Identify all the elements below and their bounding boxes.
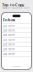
staticText: Sample subtitle line: [2, 6, 30, 10]
staticText: Inbox: [3, 17, 15, 22]
button[interactable]: List item: [1, 47, 31, 52]
staticText: List item: [3, 24, 14, 27]
button[interactable]: List item: [1, 33, 31, 38]
button[interactable]: List item: [1, 38, 31, 42]
staticText: Tap to Copy: [2, 2, 24, 7]
button[interactable]: List item: [1, 52, 31, 56]
staticText: List item: [3, 52, 14, 56]
button[interactable]: List item: [1, 28, 31, 33]
staticText: List item: [3, 29, 14, 32]
button[interactable]: List item: [1, 42, 31, 47]
button[interactable]: List item: [1, 23, 31, 28]
staticText: List item: [3, 33, 14, 37]
staticText: List item: [3, 43, 14, 46]
staticText: List item: [3, 47, 14, 51]
staticText: List item: [3, 38, 14, 41]
